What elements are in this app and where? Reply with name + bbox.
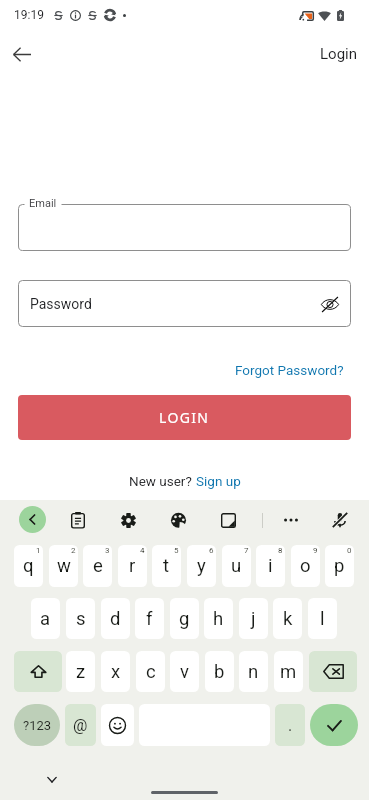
staticText: 9 (313, 546, 318, 555)
button[interactable]: v (170, 651, 199, 692)
button[interactable]: f (135, 598, 164, 639)
staticText: b (214, 661, 225, 683)
staticText: g (179, 608, 190, 630)
staticText: New user? (129, 473, 196, 489)
button[interactable]: e (83, 545, 112, 587)
button[interactable]: z (66, 651, 95, 692)
staticText: y (197, 555, 206, 577)
button[interactable]: Hide keyboard (38, 766, 65, 793)
button[interactable]: r (118, 545, 147, 587)
staticText: p (334, 555, 345, 577)
button[interactable]: Emoji (101, 704, 134, 746)
button[interactable]: a (31, 598, 60, 639)
button[interactable]: Clipboard (64, 506, 92, 534)
button[interactable]: Sign up (196, 473, 241, 489)
staticText: d (110, 608, 121, 630)
staticText: k (283, 608, 293, 630)
staticText: 6 (209, 546, 214, 555)
button[interactable]: Enter (310, 704, 358, 746)
staticText: 3 (105, 546, 110, 555)
button[interactable]: s (66, 598, 95, 639)
button[interactable]: . (275, 704, 305, 746)
button[interactable]: d (101, 598, 130, 639)
button[interactable]: ?123 (14, 704, 60, 746)
button[interactable]: Backspace (309, 651, 357, 692)
staticText: 0 (347, 546, 352, 555)
button[interactable]: o (291, 545, 320, 587)
staticText: v (180, 661, 189, 683)
staticText: ?123 (23, 718, 52, 733)
staticText: 4 (140, 546, 145, 555)
staticText: 7 (244, 546, 249, 555)
button[interactable]: p (325, 545, 354, 587)
button[interactable]: j (239, 598, 268, 639)
staticText: l (320, 608, 325, 630)
button[interactable]: Show password (315, 289, 345, 319)
button[interactable]: Login (314, 41, 363, 67)
staticText: Email (29, 197, 57, 210)
button[interactable]: q (14, 545, 43, 587)
staticText: 5 (174, 546, 179, 555)
staticText: e (93, 555, 103, 577)
button[interactable]: Theme (164, 506, 192, 534)
button[interactable]: y (187, 545, 216, 587)
button[interactable]: l (308, 598, 337, 639)
button[interactable]: k (273, 598, 302, 639)
button[interactable]: Sticker (214, 506, 242, 534)
staticText: . (288, 716, 293, 735)
staticText: m (280, 661, 297, 683)
staticText: n (248, 661, 259, 683)
button[interactable]: c (136, 651, 165, 692)
staticText: q (23, 555, 34, 577)
button[interactable]: Show more tools (19, 506, 46, 533)
button[interactable]: More options (277, 506, 305, 534)
staticText: j (251, 608, 256, 630)
button[interactable]: Forgot Password? (225, 359, 351, 381)
button[interactable]: LOGIN (18, 395, 351, 440)
staticText: o (300, 555, 311, 577)
staticText: u (231, 555, 242, 577)
staticText: 2 (71, 546, 76, 555)
button[interactable]: Shift (14, 651, 62, 692)
staticText: i (268, 555, 273, 577)
staticText: Password (30, 296, 92, 312)
staticText: f (146, 608, 153, 630)
staticText: 8 (278, 546, 283, 555)
staticText: r (129, 555, 136, 577)
button[interactable]: x (101, 651, 130, 692)
staticText: x (111, 661, 121, 683)
staticText: h (213, 608, 224, 630)
staticText: s (76, 608, 86, 630)
button[interactable]: m (274, 651, 303, 692)
button[interactable]: g (170, 598, 199, 639)
staticText: 1 (36, 546, 41, 555)
button[interactable]: b (205, 651, 234, 692)
staticText: t (163, 555, 170, 577)
staticText: Sign up (196, 473, 241, 489)
staticText: c (146, 661, 156, 683)
button[interactable]: Back (4, 36, 40, 72)
button[interactable]: w (49, 545, 78, 587)
staticText: z (76, 661, 86, 683)
staticText: a (40, 608, 51, 630)
button[interactable]: i (256, 545, 285, 587)
button[interactable]: t (152, 545, 181, 587)
button[interactable]: @ (65, 704, 96, 746)
staticText: @ (73, 716, 88, 735)
staticText: Login (320, 45, 357, 63)
button[interactable]: h (204, 598, 233, 639)
button[interactable]: Settings (114, 506, 142, 534)
button[interactable]: Voice input off (326, 506, 354, 534)
staticText: 19:19 (14, 8, 44, 22)
staticText: LOGIN (159, 408, 210, 427)
button[interactable]: n (239, 651, 268, 692)
staticText: Forgot Password? (235, 362, 344, 378)
staticText: w (57, 555, 71, 577)
button[interactable]: u (222, 545, 251, 587)
